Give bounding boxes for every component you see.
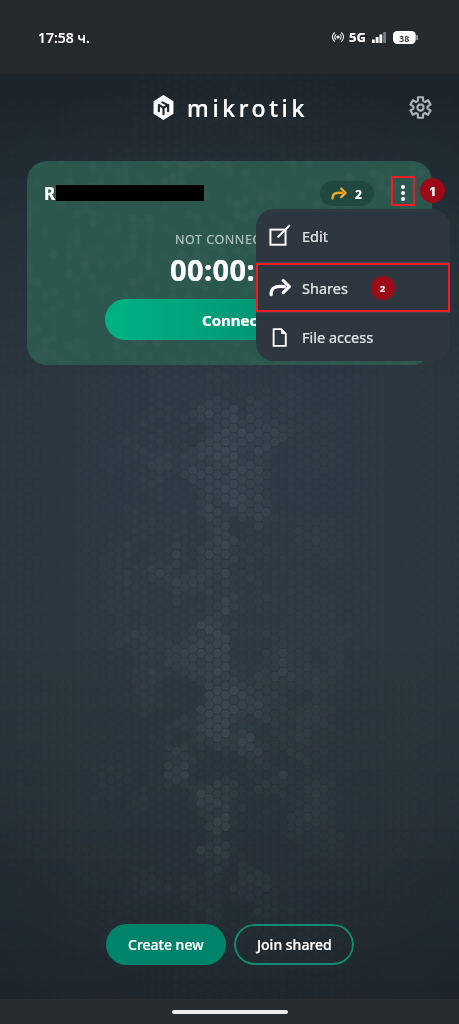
button[interactable]: Edit xyxy=(256,209,450,262)
staticText: 17:58 ч. xyxy=(38,28,90,47)
staticText: 2 xyxy=(380,282,386,294)
button[interactable]: Settings xyxy=(403,90,437,124)
staticText: 38 xyxy=(399,32,410,44)
staticText: Shares xyxy=(302,278,348,298)
staticText: R xyxy=(44,182,56,205)
staticText: File access xyxy=(302,327,374,347)
button[interactable]: More options xyxy=(391,178,415,208)
button[interactable]: File access xyxy=(256,313,450,361)
staticText: 5G xyxy=(349,28,366,46)
staticText: Join shared xyxy=(257,935,332,954)
button[interactable]: R xyxy=(27,161,432,365)
staticText: Connect xyxy=(202,310,264,330)
staticText: Edit xyxy=(302,226,328,246)
staticText: mikrotik xyxy=(187,92,308,123)
staticText: 2 xyxy=(355,186,362,202)
staticText: Create new xyxy=(128,935,204,954)
button[interactable]: Connect xyxy=(105,299,360,340)
button[interactable]: 2 xyxy=(320,181,374,206)
button[interactable]: Join shared xyxy=(234,924,354,965)
staticText: 00:00:00 xyxy=(170,250,290,289)
staticText: 1 xyxy=(429,182,437,200)
staticText: NOT CONNECTED xyxy=(175,231,286,248)
button[interactable]: Create new xyxy=(106,924,226,965)
button[interactable]: Shares xyxy=(256,263,450,312)
